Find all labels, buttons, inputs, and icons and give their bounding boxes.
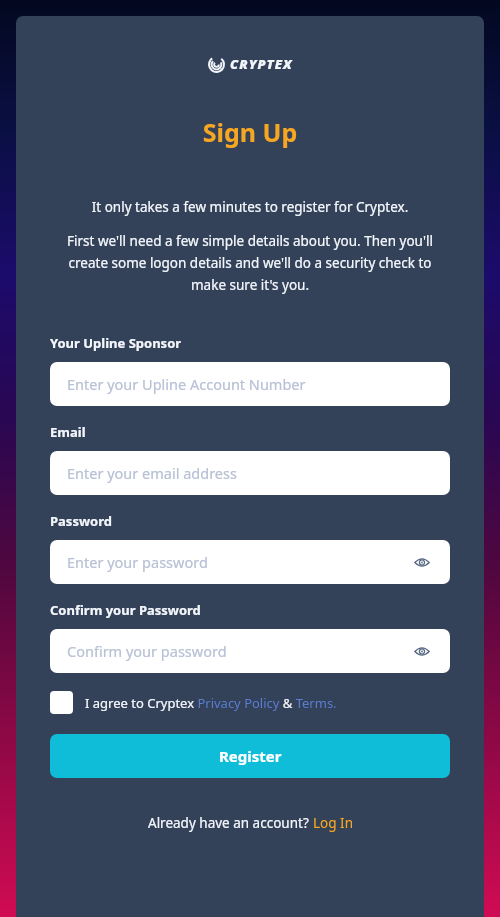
staticText: Register (219, 746, 282, 766)
button[interactable]: Show password (411, 640, 433, 662)
staticText: Enter your password (67, 552, 208, 572)
staticText: I agree to Cryptex Privacy Policy & Term… (85, 694, 337, 712)
button[interactable]: Enter your password (50, 540, 450, 584)
button[interactable]: I agree to Cryptex Privacy Policy & Term… (50, 691, 450, 714)
staticText: Enter your Upline Account Number (67, 374, 306, 394)
staticText: First we'll need a few simple details ab… (50, 232, 450, 294)
button[interactable]: Register (50, 734, 450, 778)
button[interactable]: Enter your email address (50, 451, 450, 495)
staticText: It only takes a few minutes to register … (50, 198, 450, 216)
staticText: Your Upline Sponsor (50, 334, 182, 352)
staticText: Already have an account? (148, 814, 313, 832)
button[interactable]: Log In (313, 814, 353, 832)
staticText: CRYPTEX (230, 55, 293, 73)
button[interactable]: Confirm your password (50, 629, 450, 673)
staticText: Password (50, 512, 112, 530)
staticText: Confirm your password (67, 641, 227, 661)
staticText: Log In (313, 814, 353, 832)
staticText: Sign Up (50, 115, 450, 149)
staticText: Confirm your Password (50, 601, 201, 619)
staticText: Email (50, 423, 86, 441)
staticText: Enter your email address (67, 463, 237, 483)
button[interactable]: Show password (411, 551, 433, 573)
button[interactable]: Enter your Upline Account Number (50, 362, 450, 406)
